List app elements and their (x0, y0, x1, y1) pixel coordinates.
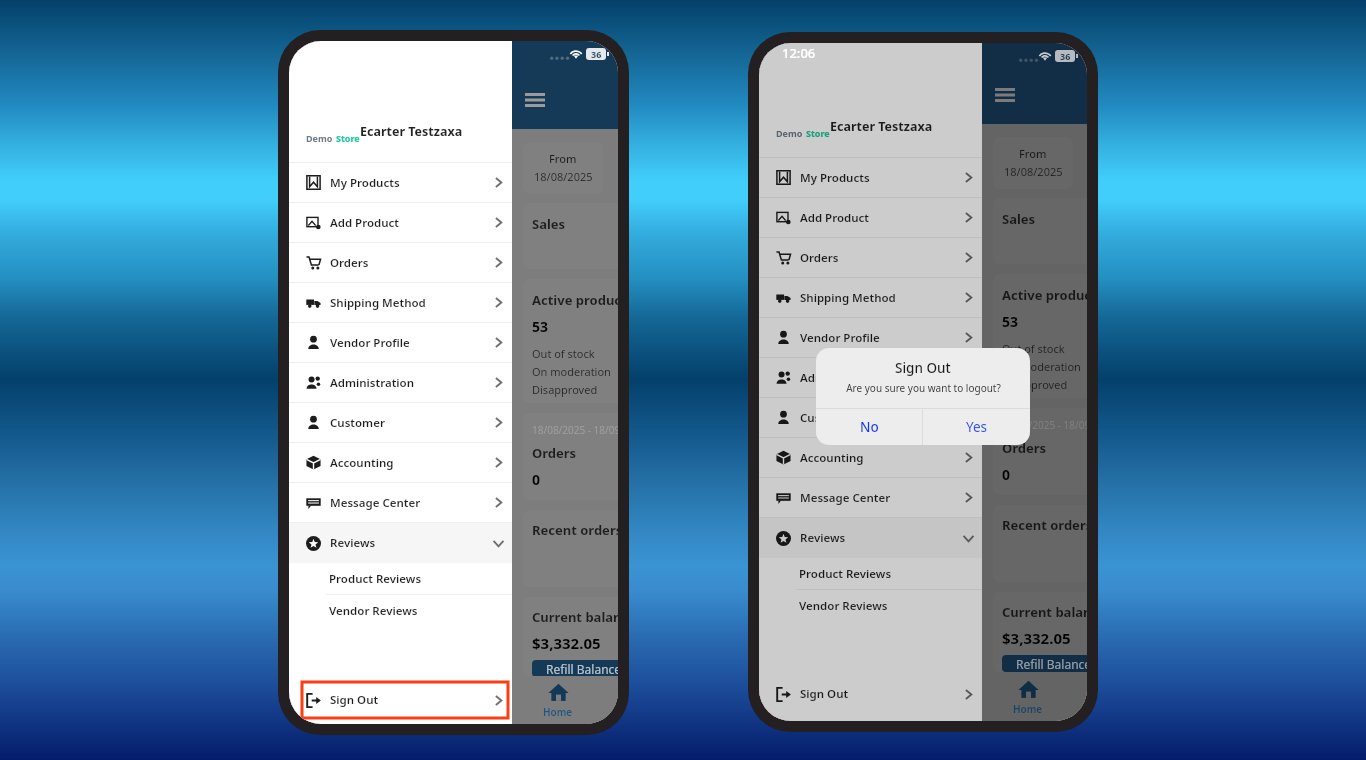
button[interactable]: Orders (759, 238, 982, 277)
button[interactable]: Refill Balance (1002, 655, 1087, 672)
staticText: Administration (330, 375, 414, 391)
staticText: Active products (532, 291, 618, 309)
button[interactable]: No (816, 409, 922, 445)
button[interactable]: Vendor Reviews (289, 595, 512, 626)
staticText: 53 (1002, 312, 1019, 331)
button[interactable]: Message Center (759, 478, 982, 517)
button[interactable]: Orders (289, 243, 512, 282)
staticText: Refill Balance (546, 661, 618, 677)
staticText: Ecarter Testzaxa (830, 118, 933, 135)
staticText: Disapproved (1002, 377, 1068, 392)
button[interactable]: My Products (289, 163, 512, 202)
button[interactable]: Accounting (289, 443, 512, 482)
staticText: 18/08/2025 - 18/09/2025 (1002, 418, 1087, 432)
staticText: Store (806, 127, 830, 139)
staticText: Orders (532, 444, 577, 462)
staticText: Customer (800, 410, 855, 426)
staticText: Current balance (532, 608, 618, 626)
staticText: Shipping Method (330, 295, 426, 311)
button[interactable]: Vendor Profile (759, 318, 982, 357)
button[interactable]: Shipping Method (289, 283, 512, 322)
button[interactable]: Open navigation menu (517, 82, 553, 118)
staticText: Are you sure you want to logout? (846, 381, 1001, 395)
staticText: Yes (966, 418, 988, 436)
staticText: Sales (1002, 210, 1036, 228)
staticText: Store (336, 132, 360, 144)
staticText: Customer (330, 415, 385, 431)
staticText: Demo (776, 127, 803, 139)
button[interactable]: Vendor Profile (289, 323, 512, 362)
button[interactable]: Sign Out (289, 682, 512, 718)
staticText: Accounting (800, 450, 864, 466)
staticText: Vendor Reviews (799, 598, 888, 614)
button[interactable]: Refill Balance (532, 660, 618, 677)
staticText: No (860, 418, 879, 436)
staticText: Active products (1002, 286, 1087, 304)
button[interactable]: Accounting (759, 438, 982, 477)
button[interactable]: My Products (759, 158, 982, 197)
button[interactable]: Shipping Method (759, 278, 982, 317)
button[interactable]: Product Reviews (759, 558, 982, 589)
staticText: Recent orders (1002, 516, 1087, 534)
staticText: Recent orders (532, 521, 618, 539)
staticText: Vendor Profile (330, 335, 410, 351)
button[interactable]: Home (543, 682, 573, 719)
button[interactable]: Reviews (759, 518, 982, 558)
staticText: 53 (532, 317, 549, 336)
staticText: 18/08/2025 - 18/09/2025 (532, 423, 618, 437)
staticText: Vendor Reviews (329, 603, 418, 619)
staticText: 0 (532, 470, 541, 489)
staticText: Add Product (800, 210, 870, 226)
staticText: Product Reviews (329, 571, 422, 587)
button[interactable]: Customer (759, 398, 982, 437)
button[interactable]: Home (1013, 679, 1043, 716)
staticText: Sign Out (330, 692, 379, 708)
staticText: Orders (330, 255, 369, 271)
button[interactable]: Administration (289, 363, 512, 402)
staticText: Message Center (800, 490, 891, 506)
staticText: Sales (532, 215, 566, 233)
button[interactable]: Customer (289, 403, 512, 442)
staticText: Add Product (330, 215, 400, 231)
staticText: $3,332.05 (532, 633, 601, 653)
button[interactable]: Sign Out (759, 676, 982, 712)
staticText: From (549, 151, 577, 166)
staticText: $3,332.05 (1002, 628, 1071, 648)
button[interactable]: Reviews (289, 523, 512, 563)
button[interactable]: Add Product (289, 203, 512, 242)
staticText: Message Center (330, 495, 421, 511)
staticText: Administration (800, 370, 884, 386)
staticText: Sign Out (895, 359, 951, 377)
staticText: 0 (1002, 465, 1011, 484)
staticText: My Products (800, 170, 870, 186)
button[interactable]: Open navigation menu (987, 77, 1023, 113)
button[interactable]: Product Reviews (289, 563, 512, 594)
staticText: 36 (591, 48, 602, 60)
staticText: Sign Out (800, 686, 849, 702)
button[interactable]: Administration (759, 358, 982, 397)
staticText: 36 (1060, 50, 1071, 62)
staticText: Out of stock (532, 346, 595, 361)
button[interactable]: Vendor Reviews (759, 590, 982, 621)
staticText: Demo (306, 132, 333, 144)
staticText: 18/08/2025 (1004, 164, 1063, 179)
staticText: Refill Balance (1016, 656, 1087, 672)
staticText: Ecarter Testzaxa (360, 123, 463, 140)
staticText: Orders (1002, 439, 1047, 457)
staticText: Shipping Method (800, 290, 896, 306)
staticText: 18/08/2025 (534, 169, 593, 184)
staticText: My Products (330, 175, 400, 191)
staticText: Accounting (330, 455, 394, 471)
staticText: Reviews (330, 535, 376, 551)
button[interactable]: Yes (923, 409, 1030, 445)
button[interactable]: Add Product (759, 198, 982, 237)
staticText: Orders (800, 250, 839, 266)
staticText: Home (1013, 702, 1043, 716)
staticText: On moderation (1002, 359, 1081, 374)
staticText: From (1019, 146, 1047, 161)
staticText: On moderation (532, 364, 611, 379)
staticText: 12:06 (782, 44, 816, 62)
button[interactable]: Message Center (289, 483, 512, 522)
staticText: Current balance (1002, 603, 1087, 621)
staticText: Vendor Profile (800, 330, 880, 346)
